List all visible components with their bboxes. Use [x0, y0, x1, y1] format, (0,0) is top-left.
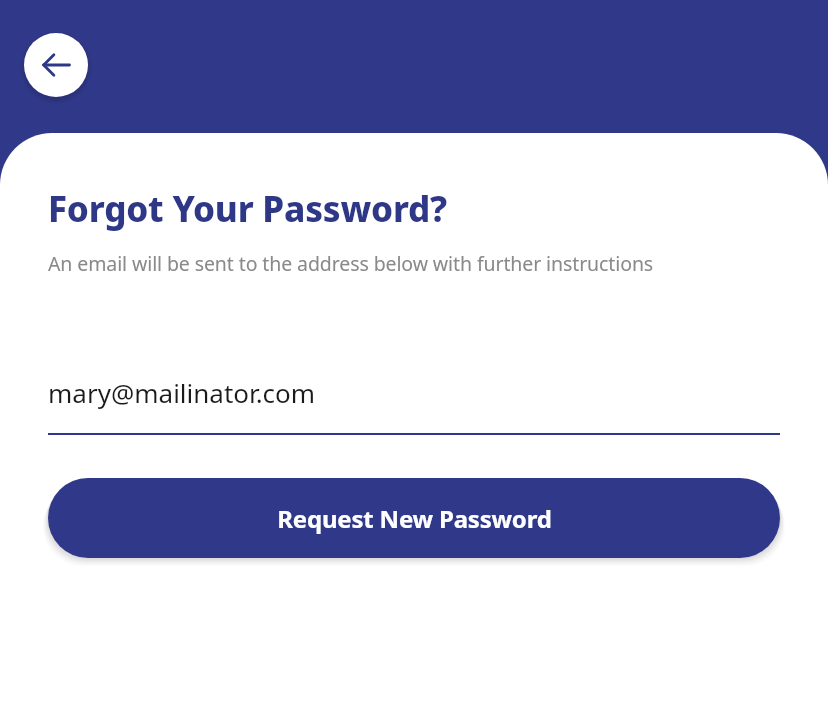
staticText: An email will be sent to the address bel… — [48, 250, 654, 277]
button[interactable]: Back — [24, 33, 88, 97]
staticText: Request New Password — [277, 502, 552, 535]
button[interactable]: Request New Password — [48, 478, 780, 558]
button[interactable]: mary@mailinator.com — [48, 375, 780, 435]
staticText: Forgot Your Password? — [48, 185, 448, 233]
staticText: mary@mailinator.com — [48, 375, 316, 410]
